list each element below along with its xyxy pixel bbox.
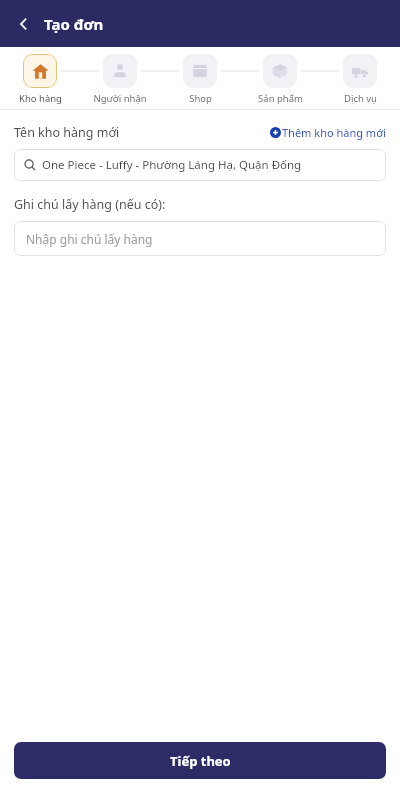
staticText: Tạo đơn [44,14,104,34]
staticText: Thêm kho hàng mới [282,125,386,140]
button[interactable]: Back [8,8,40,40]
staticText: Shop [189,92,212,105]
staticText: Tiếp theo [170,752,231,770]
button[interactable]: Kho hàng [0,47,80,109]
staticText: One Piece - Luffy - Phường Láng Hạ, Quận… [42,157,302,173]
button[interactable]: Shop [160,47,240,109]
button[interactable]: Người nhận [80,47,160,109]
button[interactable]: Dịch vụ [320,47,400,109]
staticText: Dịch vụ [344,92,377,105]
button[interactable]: Sản phẩm [240,47,320,109]
staticText: Sản phẩm [258,92,303,105]
staticText: Tên kho hàng mới [14,124,120,141]
staticText: Người nhận [93,92,147,105]
staticText: Nhập ghi chú lấy hàng [26,231,153,247]
button[interactable]: Thêm kho hàng mới [270,125,386,140]
button[interactable]: One Piece - Luffy - Phường Láng Hạ, Quận… [14,149,386,181]
staticText: Ghi chú lấy hàng (nếu có): [14,196,166,213]
button[interactable]: Nhập ghi chú lấy hàng [14,221,386,256]
button[interactable]: Tiếp theo [14,742,386,779]
staticText: Kho hàng [19,92,62,105]
